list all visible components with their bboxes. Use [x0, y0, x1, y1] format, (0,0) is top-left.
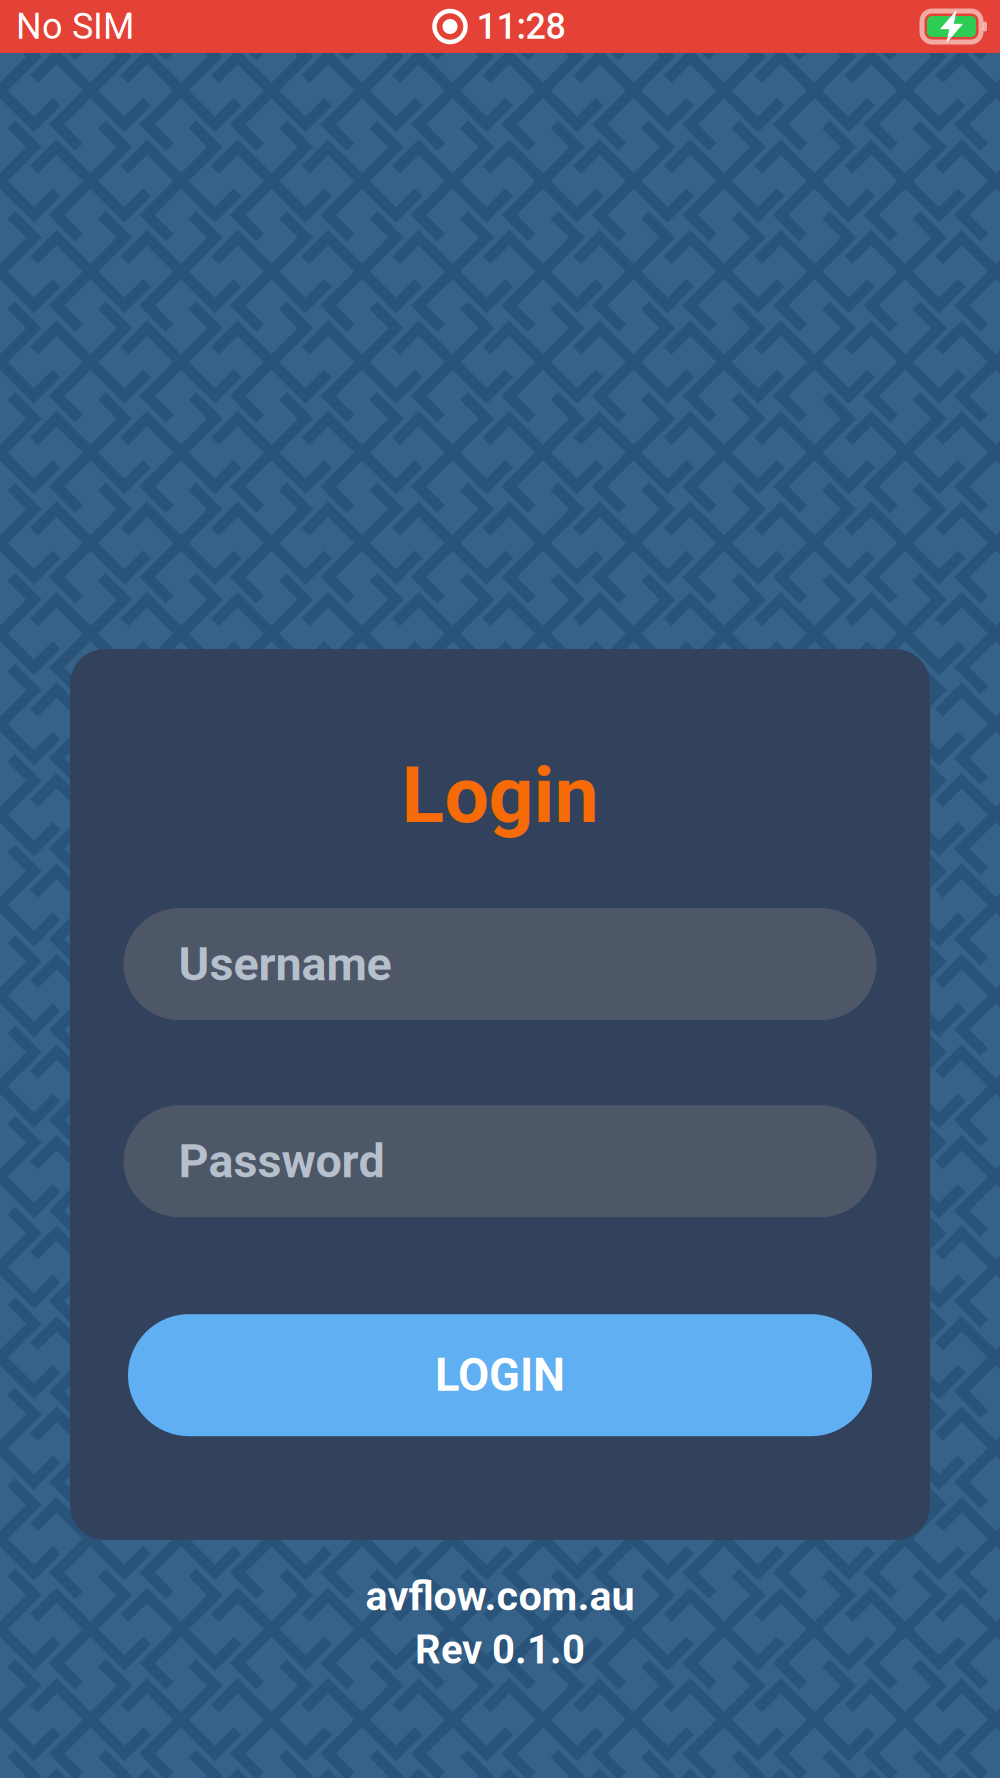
button[interactable]: LOGIN — [128, 1314, 872, 1436]
staticText: Rev 0.1.0 — [415, 1626, 585, 1673]
staticText: LOGIN — [435, 1349, 565, 1402]
staticText: 11:28 — [476, 5, 565, 48]
staticText: No SIM — [16, 5, 134, 48]
staticText: avflow.com.au — [365, 1572, 634, 1620]
button[interactable]: Password — [123, 1105, 876, 1217]
staticText: Password — [178, 1134, 384, 1188]
staticText: Username — [178, 937, 391, 991]
staticText: Login — [401, 749, 598, 841]
button[interactable]: Username — [123, 908, 876, 1020]
